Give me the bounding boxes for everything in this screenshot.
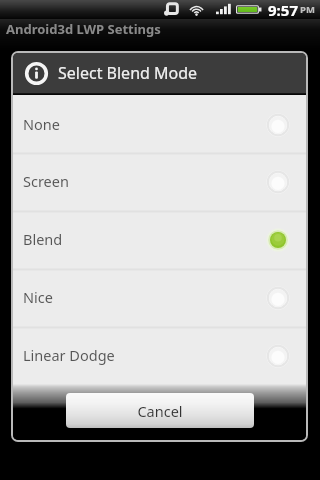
staticText: Blend — [23, 229, 63, 249]
other: Wi-Fi — [188, 1, 205, 18]
staticText: Screen — [23, 171, 69, 191]
staticText: Cancel — [137, 401, 183, 421]
staticText: Nice — [23, 287, 53, 307]
button[interactable]: Cancel — [66, 393, 254, 428]
staticText: Android3d LWP Settings — [6, 20, 161, 38]
staticText: 9:57 — [268, 0, 298, 19]
button[interactable]: Blend — [13, 210, 306, 268]
other: Signal — [216, 3, 231, 17]
button[interactable]: None — [13, 95, 306, 152]
staticText: Linear Dodge — [23, 345, 115, 365]
other: Information — [24, 61, 49, 86]
button[interactable]: Screen — [13, 152, 306, 210]
staticText: PM — [300, 3, 315, 16]
other: Battery — [236, 3, 262, 16]
button[interactable]: Linear Dodge — [13, 326, 306, 384]
other: Sync — [164, 2, 179, 17]
staticText: None — [23, 114, 60, 134]
staticText: Select Blend Mode — [58, 62, 198, 84]
button[interactable]: Nice — [13, 268, 306, 326]
